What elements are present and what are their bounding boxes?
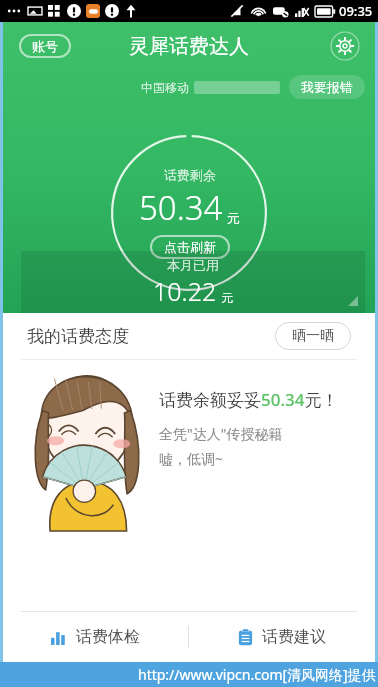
staticText: 话费体检	[76, 627, 140, 647]
staticText: 账号	[32, 38, 58, 54]
button[interactable]: 点击刷新	[150, 235, 230, 259]
button[interactable]: 我要报错	[289, 75, 365, 99]
staticText: 本月已用	[167, 257, 219, 273]
staticText: http://www.vipcn.com[清风网络]提供	[138, 665, 376, 684]
staticText: 09:35	[339, 2, 373, 20]
button[interactable]: 晒一晒	[275, 322, 351, 350]
staticText: 中国移动	[141, 80, 189, 95]
other: Settings	[330, 31, 360, 61]
staticText: 嘘，低调~	[159, 449, 224, 468]
button[interactable]: Settings	[329, 30, 361, 62]
staticText: 全凭"达人"传授秘籍	[159, 424, 283, 443]
staticText: 话费余额妥妥50.34元！	[159, 388, 339, 411]
staticText: 点击刷新	[164, 239, 216, 255]
staticText: 50.34	[139, 185, 223, 230]
staticText: 元	[227, 210, 240, 226]
staticText: 话费建议	[262, 627, 326, 647]
staticText: 晒一晒	[292, 327, 334, 345]
button[interactable]: 话费体检	[3, 612, 188, 662]
staticText: 我要报错	[301, 79, 353, 95]
button[interactable]: 话费建议	[189, 612, 375, 662]
staticText: 灵犀话费达人	[129, 34, 249, 59]
staticText: 10.22	[153, 274, 217, 308]
staticText: 话费剩余	[164, 167, 216, 183]
button[interactable]: 账号	[19, 34, 71, 58]
staticText: 元	[221, 290, 233, 305]
staticText: 我的话费态度	[27, 326, 129, 347]
